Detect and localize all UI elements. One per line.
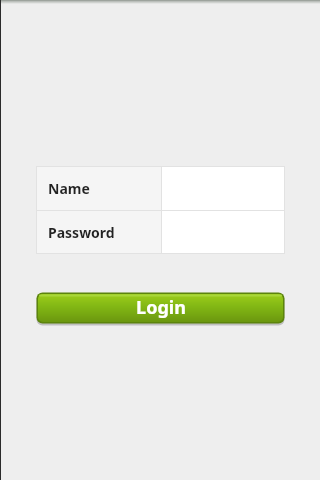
staticText: Login: [136, 295, 186, 320]
button[interactable]: Password: [37, 211, 284, 253]
button[interactable]: Login: [36, 292, 285, 325]
staticText: Password: [48, 223, 115, 242]
button[interactable]: Name: [37, 167, 284, 210]
staticText: Name: [48, 179, 90, 198]
